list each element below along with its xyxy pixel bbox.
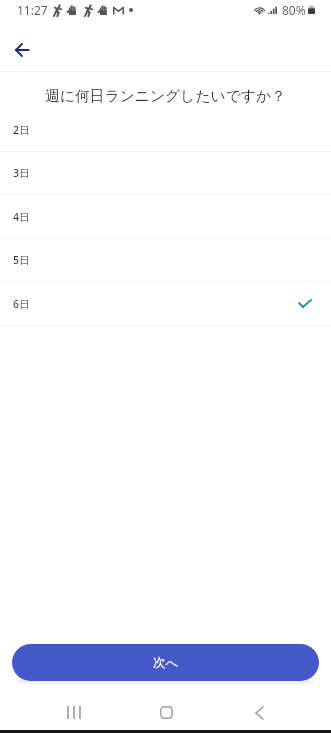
button[interactable]: 3日: [0, 152, 331, 195]
staticText: 週に何日ランニングしたいですか？: [45, 87, 286, 106]
button[interactable]: Back: [3, 31, 40, 68]
button[interactable]: Home: [144, 694, 188, 731]
button[interactable]: 6日: [0, 282, 331, 326]
button[interactable]: Recent apps: [52, 694, 96, 731]
staticText: 4日: [13, 210, 30, 224]
button[interactable]: 2日: [0, 108, 331, 152]
staticText: 2日: [13, 123, 30, 137]
staticText: 11:27: [17, 2, 48, 18]
button[interactable]: 5日: [0, 239, 331, 282]
staticText: 5日: [13, 253, 30, 267]
button[interactable]: 次へ: [12, 644, 319, 681]
button[interactable]: 4日: [0, 195, 331, 239]
staticText: 80%: [282, 2, 306, 18]
staticText: 3日: [13, 166, 30, 180]
staticText: 次へ: [153, 655, 179, 671]
button[interactable]: Back: [237, 694, 281, 731]
staticText: 6日: [13, 297, 30, 311]
